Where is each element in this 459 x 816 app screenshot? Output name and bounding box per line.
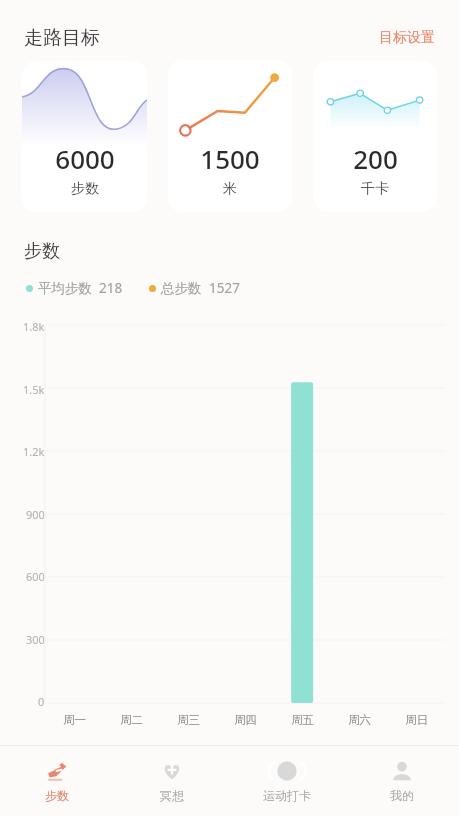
staticText: 步数 — [24, 240, 60, 263]
button[interactable]: 运动打卡 — [229, 746, 344, 816]
staticText: 目标设置 — [379, 29, 435, 47]
staticText: 1.5k — [23, 382, 45, 397]
staticText: 周一 — [63, 713, 86, 727]
staticText: 我的 — [390, 788, 414, 803]
staticText: 600 — [26, 569, 45, 584]
button[interactable]: 冥想 — [114, 746, 229, 816]
staticText: 1500 — [200, 141, 260, 176]
staticText: 周五 — [291, 713, 314, 727]
staticText: 6000 — [55, 141, 115, 176]
staticText: 米 — [223, 180, 237, 198]
staticText: 周四 — [234, 713, 257, 727]
button[interactable]: 200 — [313, 61, 437, 212]
button[interactable]: 平均步数 — [24, 277, 125, 299]
staticText: 总步数 — [161, 280, 202, 297]
staticText: 218 — [99, 279, 123, 297]
staticText: 周日 — [405, 713, 428, 727]
staticText: 运动打卡 — [263, 788, 311, 803]
button[interactable]: 目标设置 — [375, 26, 439, 50]
staticText: 200 — [353, 141, 398, 176]
staticText: 周六 — [348, 713, 371, 727]
staticText: 步数 — [71, 180, 99, 198]
staticText: 0 — [38, 694, 45, 709]
staticText: 1.8k — [23, 319, 45, 334]
button[interactable]: 我的 — [344, 746, 459, 816]
staticText: 1.2k — [23, 444, 45, 459]
staticText: 周三 — [177, 713, 200, 727]
staticText: 步数 — [45, 788, 69, 803]
button[interactable]: 步数 — [0, 746, 114, 816]
staticText: 900 — [26, 507, 45, 522]
staticText: 千卡 — [361, 180, 389, 198]
staticText: 走路目标 — [24, 26, 100, 50]
staticText: 周二 — [120, 713, 143, 727]
staticText: 1527 — [209, 279, 240, 297]
staticText: 冥想 — [160, 788, 184, 803]
staticText: 平均步数 — [38, 280, 92, 297]
button[interactable]: 6000 — [22, 61, 147, 212]
button[interactable]: 1500 — [168, 60, 292, 212]
staticText: 300 — [26, 632, 45, 647]
button[interactable]: 总步数 — [147, 277, 242, 299]
